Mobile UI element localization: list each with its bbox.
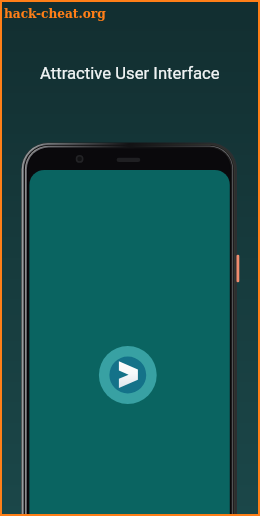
staticText: hack-cheat.org — [4, 5, 106, 21]
staticText: Attractive User Interface — [40, 64, 220, 84]
button[interactable]: Play — [100, 343, 156, 399]
